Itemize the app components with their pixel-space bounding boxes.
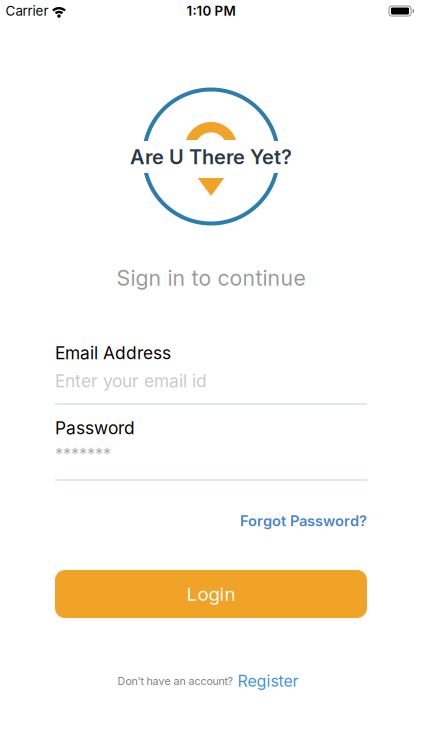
staticText: Login <box>186 583 235 605</box>
staticText: Email Address <box>55 343 171 363</box>
button[interactable]: Register <box>237 672 298 690</box>
staticText: Register <box>237 672 298 690</box>
staticText: Don't have an account? <box>117 675 232 687</box>
staticText: Forgot Password? <box>240 512 367 530</box>
button[interactable]: Login <box>55 570 367 618</box>
staticText: Carrier <box>5 3 48 19</box>
button[interactable]: Forgot Password? <box>240 512 367 530</box>
staticText: Sign in to continue <box>116 265 305 291</box>
staticText: Password <box>55 418 135 438</box>
staticText: Enter your email id <box>55 371 207 391</box>
staticText: 1:10 PM <box>186 3 235 19</box>
staticText: ******* <box>55 445 111 463</box>
staticText: Are U There Yet? <box>130 145 292 169</box>
